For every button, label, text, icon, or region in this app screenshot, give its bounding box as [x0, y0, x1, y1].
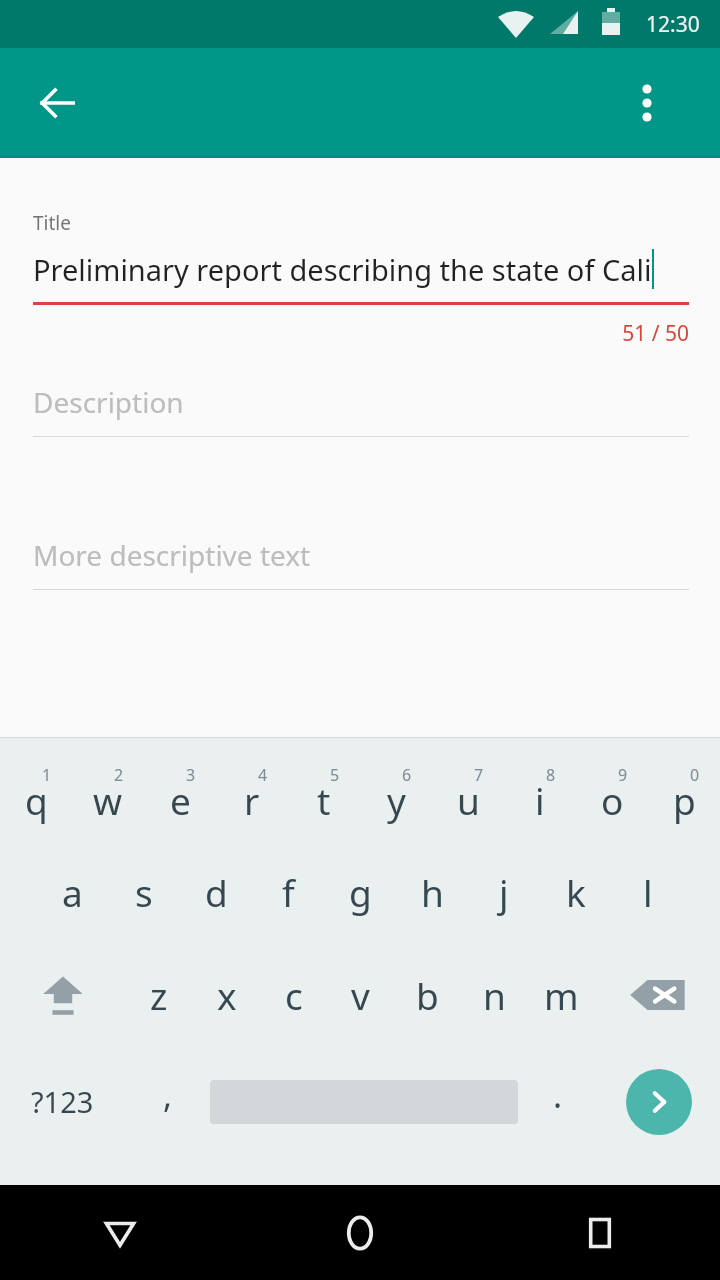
- button[interactable]: Navigate up: [13, 59, 101, 147]
- button[interactable]: a: [36, 840, 108, 943]
- staticText: 7: [474, 764, 484, 786]
- staticText: g: [349, 867, 372, 917]
- button[interactable]: Preliminary report describing the state …: [0, 246, 720, 292]
- button[interactable]: 3: [144, 738, 216, 840]
- staticText: v: [351, 970, 370, 1020]
- staticText: m: [544, 970, 579, 1020]
- staticText: f: [282, 867, 295, 917]
- staticText: i: [535, 775, 545, 825]
- staticText: ?123: [31, 1082, 94, 1121]
- staticText: 9: [618, 764, 628, 786]
- staticText: Title: [33, 210, 71, 236]
- staticText: n: [483, 970, 506, 1020]
- staticText: 12:30: [646, 10, 700, 39]
- staticText: q: [25, 775, 48, 825]
- button[interactable]: g: [324, 840, 396, 943]
- button[interactable]: b: [394, 943, 461, 1046]
- staticText: p: [673, 775, 696, 825]
- staticText: 8: [546, 764, 556, 786]
- staticText: x: [217, 970, 237, 1020]
- button[interactable]: n: [461, 943, 528, 1046]
- button[interactable]: d: [180, 840, 252, 943]
- button[interactable]: Shift: [0, 943, 125, 1046]
- staticText: y: [387, 775, 406, 825]
- button[interactable]: 1: [0, 738, 72, 840]
- staticText: h: [421, 867, 444, 917]
- staticText: More descriptive text: [33, 536, 311, 574]
- button[interactable]: l: [612, 840, 684, 943]
- button[interactable]: Enter: [598, 1046, 720, 1157]
- button[interactable]: 9: [576, 738, 648, 840]
- button[interactable]: Back: [0, 1185, 240, 1280]
- staticText: t: [317, 775, 331, 825]
- button[interactable]: More descriptive text: [0, 533, 720, 590]
- staticText: 0: [690, 764, 700, 786]
- button[interactable]: v: [327, 943, 394, 1046]
- staticText: 1: [42, 764, 52, 786]
- button[interactable]: x: [193, 943, 260, 1046]
- staticText: 2: [114, 764, 124, 786]
- button[interactable]: z: [125, 943, 193, 1046]
- staticText: s: [135, 867, 153, 917]
- staticText: u: [457, 775, 480, 825]
- staticText: e: [170, 775, 191, 825]
- button[interactable]: h: [396, 840, 468, 943]
- button[interactable]: 5: [288, 738, 360, 840]
- button[interactable]: Description: [0, 380, 720, 437]
- staticText: c: [285, 970, 303, 1020]
- button[interactable]: 6: [360, 738, 432, 840]
- staticText: a: [62, 867, 83, 917]
- button[interactable]: 4: [216, 738, 288, 840]
- button[interactable]: f: [252, 840, 324, 943]
- staticText: d: [205, 867, 228, 917]
- staticText: l: [643, 867, 653, 917]
- staticText: ,: [163, 1072, 173, 1118]
- staticText: 4: [258, 764, 268, 786]
- button[interactable]: Home: [240, 1185, 480, 1280]
- staticText: .: [553, 1072, 563, 1118]
- button[interactable]: m: [528, 943, 595, 1046]
- staticText: Description: [33, 383, 184, 421]
- button[interactable]: 0: [648, 738, 720, 840]
- staticText: w: [93, 775, 123, 825]
- button[interactable]: .: [518, 1046, 598, 1157]
- button[interactable]: c: [260, 943, 327, 1046]
- staticText: z: [150, 970, 168, 1020]
- staticText: 3: [186, 764, 196, 786]
- button[interactable]: Space: [210, 1046, 518, 1157]
- button[interactable]: s: [108, 840, 180, 943]
- staticText: b: [416, 970, 439, 1020]
- button[interactable]: j: [468, 840, 540, 943]
- button[interactable]: Backspace: [595, 943, 720, 1046]
- button[interactable]: ,: [125, 1046, 210, 1157]
- button[interactable]: More options: [603, 59, 691, 147]
- button[interactable]: 7: [432, 738, 504, 840]
- staticText: r: [244, 775, 260, 825]
- button[interactable]: Recent apps: [480, 1185, 720, 1280]
- button[interactable]: 2: [72, 738, 144, 840]
- staticText: Preliminary report describing the state …: [33, 250, 652, 289]
- staticText: 5: [330, 764, 340, 786]
- staticText: k: [566, 867, 586, 917]
- button[interactable]: k: [540, 840, 612, 943]
- staticText: 51 / 50: [0, 319, 689, 348]
- staticText: j: [499, 867, 509, 917]
- staticText: o: [601, 775, 624, 825]
- button[interactable]: 8: [504, 738, 576, 840]
- button[interactable]: ?123: [0, 1046, 125, 1157]
- staticText: 6: [402, 764, 412, 786]
